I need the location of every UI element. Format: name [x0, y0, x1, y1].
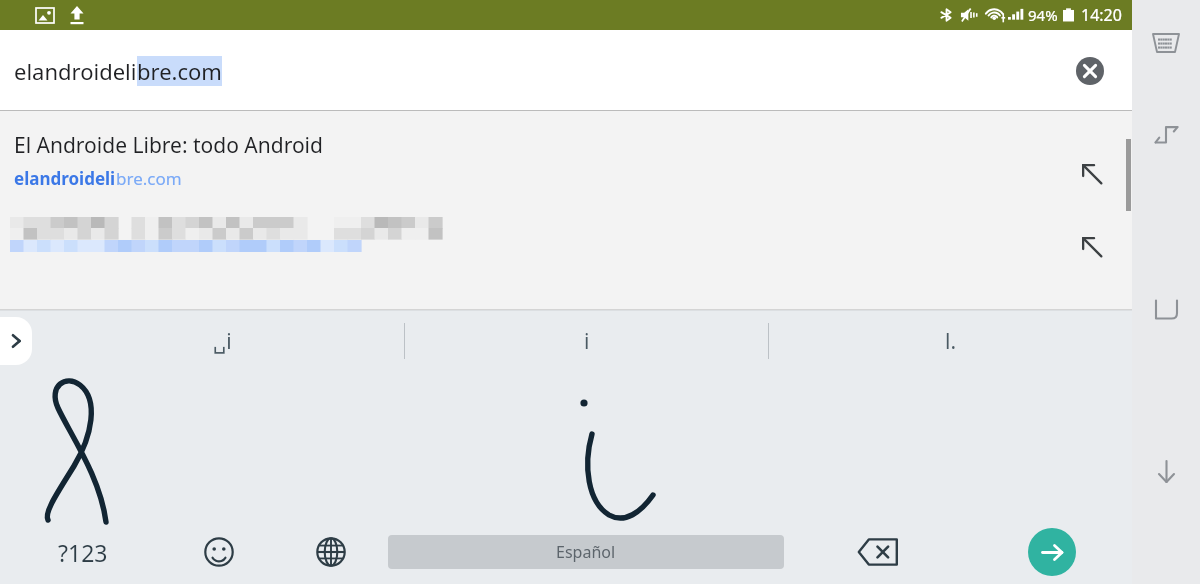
button[interactable]: ␣i: [40, 310, 404, 372]
button[interactable]: Hide keyboard: [1135, 12, 1197, 74]
button[interactable]: Home: [1135, 278, 1197, 340]
button[interactable]: Español: [388, 535, 784, 569]
button[interactable]: More candidates: [0, 317, 32, 365]
staticText: ?123: [58, 537, 108, 568]
button[interactable]: ?123: [0, 520, 165, 584]
staticText: El Androide Libre: todo Android: [14, 131, 323, 160]
button[interactable]: El Androide Libre: todo Android: [0, 111, 1132, 209]
staticText: bre.com: [137, 56, 222, 86]
button[interactable]: Use this suggestion: [1072, 154, 1112, 194]
button[interactable]: Emoji: [165, 520, 273, 584]
staticText: bre.com: [116, 167, 182, 190]
staticText: Español: [556, 541, 616, 563]
button[interactable]: Backspace: [784, 520, 972, 584]
staticText: 14:20: [1081, 4, 1122, 26]
staticText: ␣i: [213, 327, 232, 356]
staticText: elandroideli: [14, 56, 137, 86]
button[interactable]: Change language: [273, 520, 388, 584]
button[interactable]: elandroideli: [0, 30, 1132, 111]
button[interactable]: Recents: [1135, 440, 1197, 502]
button[interactable]: i: [405, 310, 768, 372]
staticText: elandroideli: [14, 167, 116, 190]
button[interactable]: Clear text: [1068, 49, 1112, 93]
button[interactable]: l.: [769, 310, 1132, 372]
button[interactable]: Use this suggestion: [0, 209, 1132, 309]
staticText: i: [584, 327, 590, 356]
button[interactable]: Enter: [972, 520, 1132, 584]
button[interactable]: Back: [1135, 104, 1197, 166]
staticText: 94%: [1028, 5, 1058, 25]
staticText: l.: [945, 327, 957, 356]
button[interactable]: Use this suggestion: [1072, 227, 1112, 267]
